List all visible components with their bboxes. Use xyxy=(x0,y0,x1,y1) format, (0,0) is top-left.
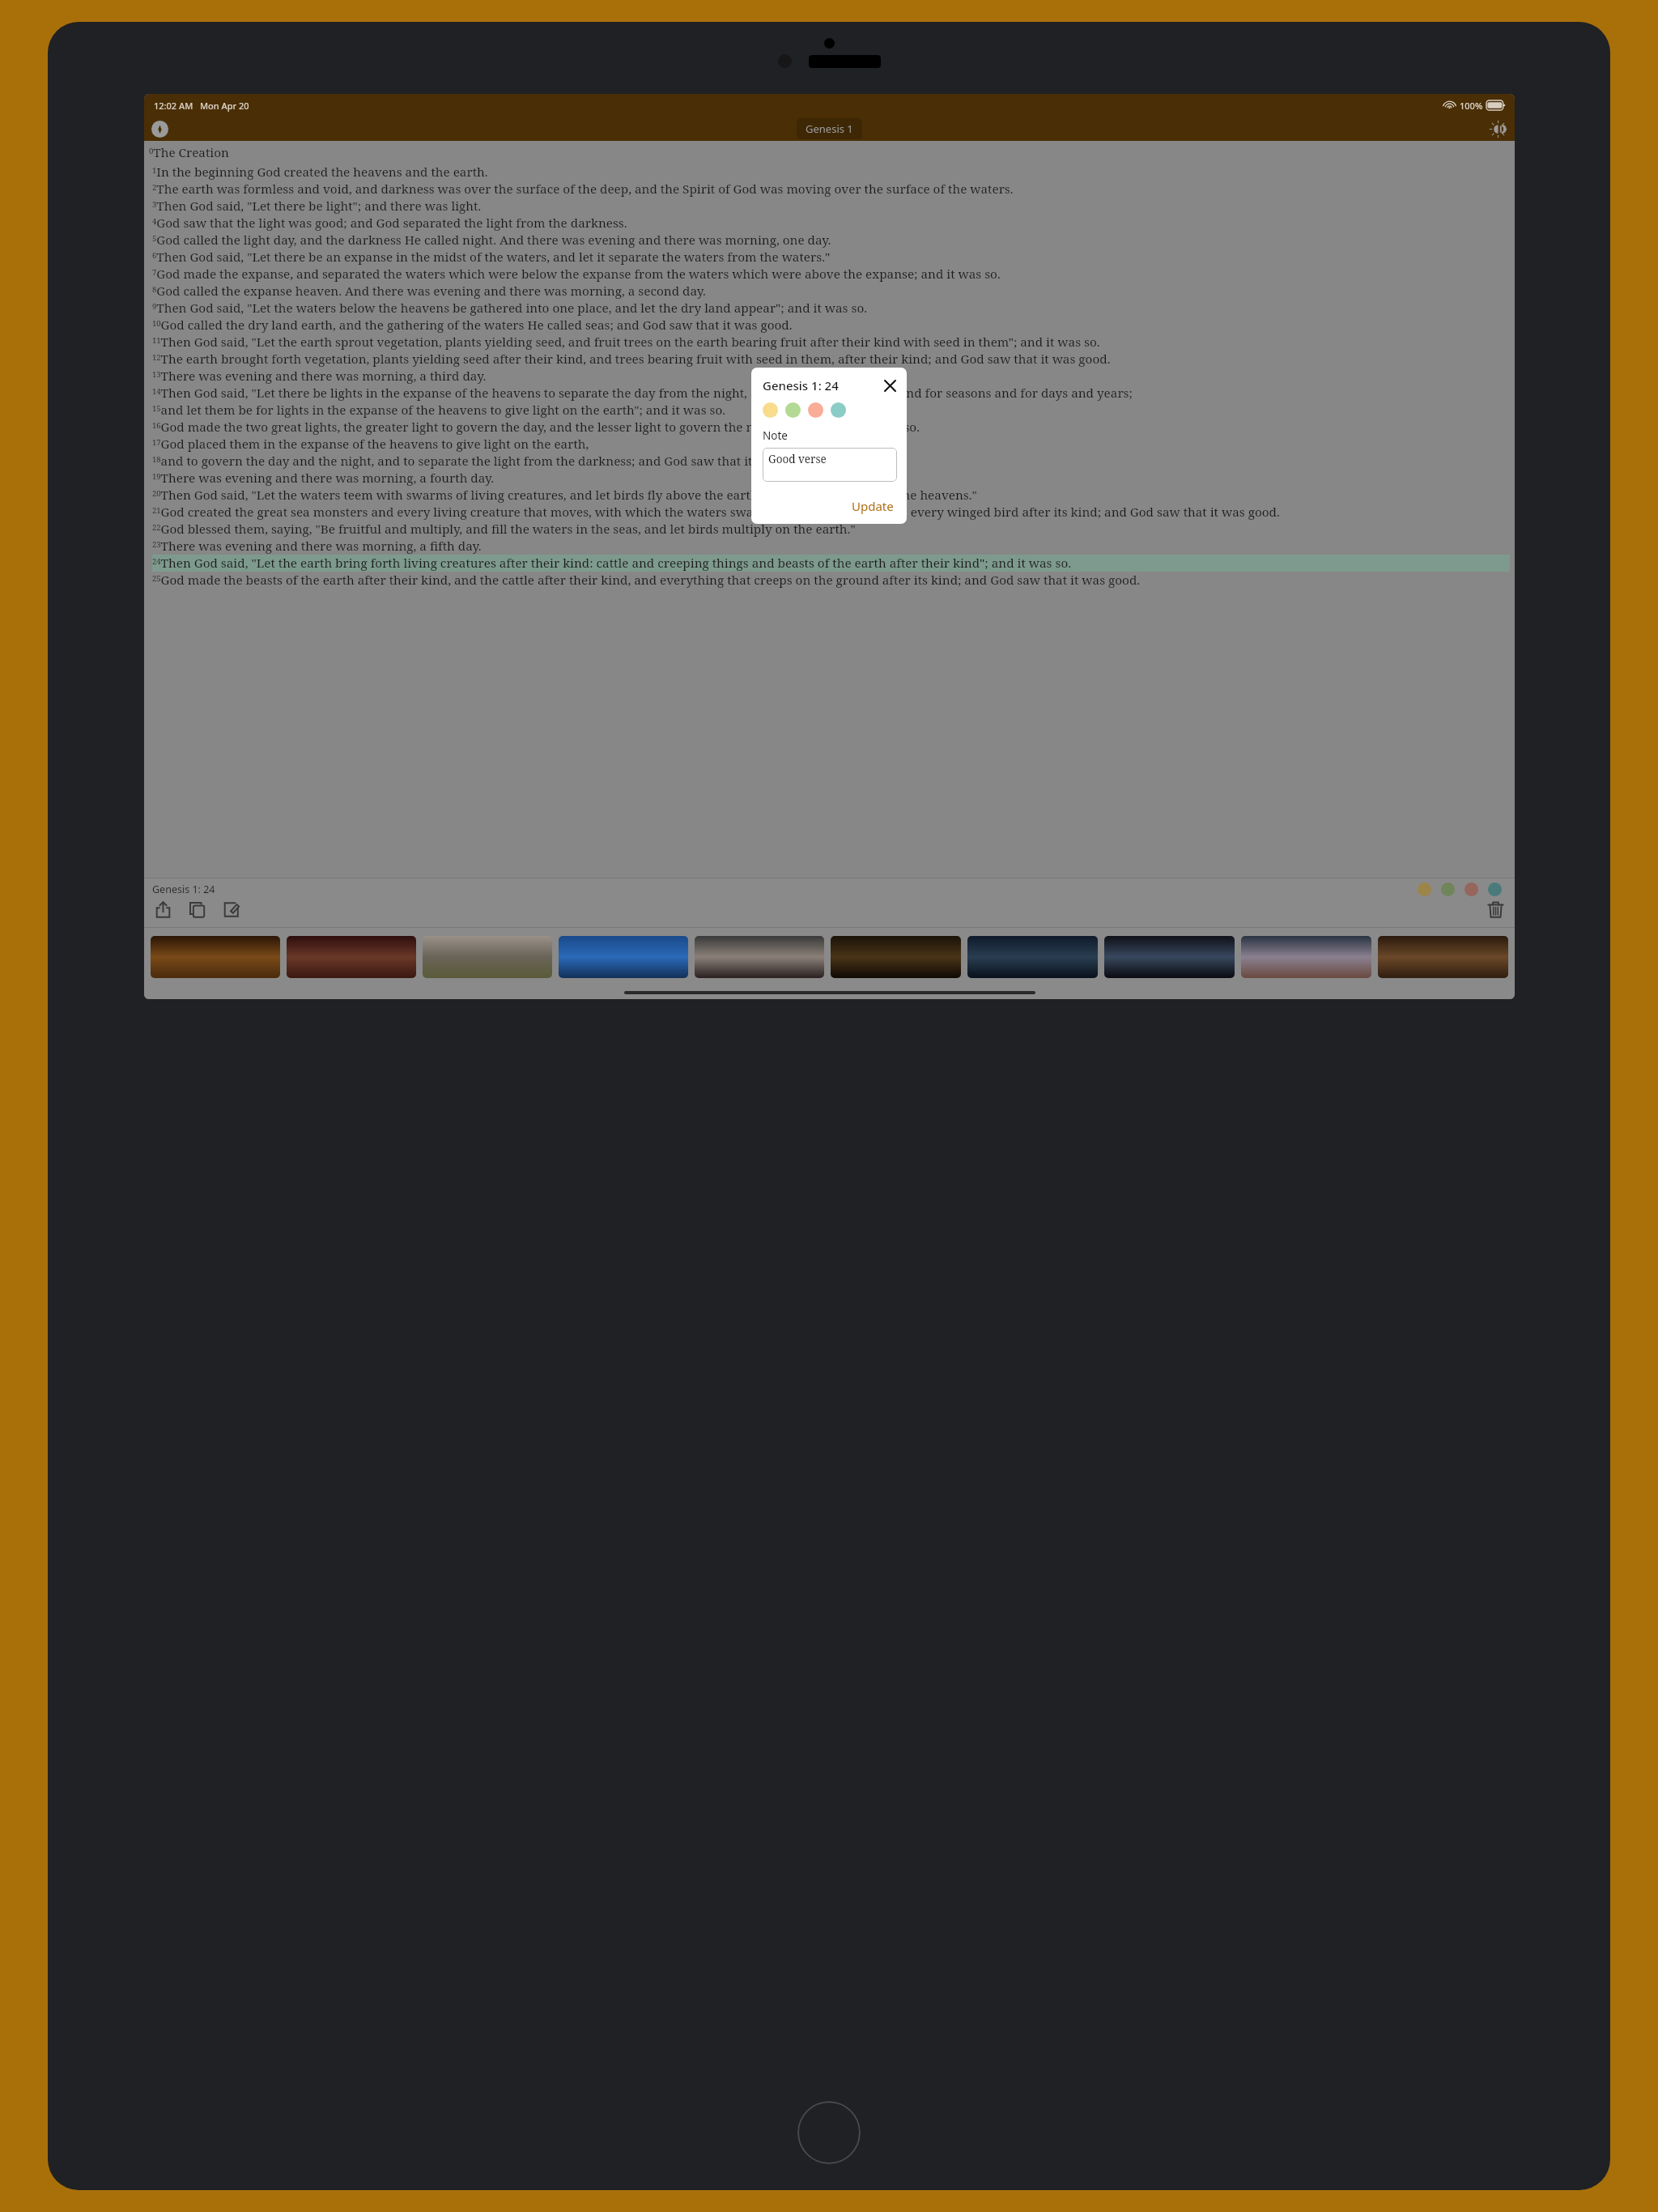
staticText: 100% xyxy=(1460,100,1483,112)
button[interactable]: 19There was evening and there was mornin… xyxy=(152,470,1510,487)
button[interactable]: Genesis 1 xyxy=(797,118,862,139)
staticText: Genesis 1 xyxy=(806,121,853,136)
button[interactable]: 15and let them be for lights in the expa… xyxy=(152,402,1510,419)
staticText: Note xyxy=(763,428,788,443)
button[interactable]: 20Then God said, "Let the waters teem wi… xyxy=(152,487,1510,504)
button[interactable]: Background image xyxy=(287,936,416,978)
button[interactable]: 3Then God said, "Let there be light"; an… xyxy=(152,198,1510,215)
staticText: Good verse xyxy=(768,452,827,466)
button[interactable]: 14Then God said, "Let there be lights in… xyxy=(152,385,1510,402)
button[interactable]: Highlight colour xyxy=(1488,883,1502,896)
button[interactable]: Pick colour xyxy=(785,402,801,418)
button[interactable]: 4God saw that the light was good; and Go… xyxy=(152,215,1510,232)
button[interactable]: 23There was evening and there was mornin… xyxy=(152,538,1510,555)
button[interactable]: Background image xyxy=(695,936,824,978)
button[interactable]: Home xyxy=(797,2101,861,2164)
button[interactable]: Share xyxy=(154,900,172,919)
button[interactable]: 12The earth brought forth vegetation, pl… xyxy=(152,351,1510,368)
button[interactable]: Copy xyxy=(188,900,206,919)
button[interactable]: 0The Creation xyxy=(149,144,1510,161)
button[interactable]: 1In the beginning God created the heaven… xyxy=(152,164,1510,181)
button[interactable]: 5God called the light day, and the darkn… xyxy=(152,232,1510,249)
button[interactable]: 16God made the two great lights, the gre… xyxy=(152,419,1510,436)
button[interactable]: 9Then God said, "Let the waters below th… xyxy=(152,300,1510,317)
button[interactable]: 10God called the dry land earth, and the… xyxy=(152,317,1510,334)
button[interactable]: Toggle theme xyxy=(1489,120,1507,138)
button[interactable]: 21God created the great sea monsters and… xyxy=(152,504,1510,521)
button[interactable]: Background image xyxy=(423,936,552,978)
button[interactable]: 8God called the expanse heaven. And ther… xyxy=(152,283,1510,300)
button[interactable]: 13There was evening and there was mornin… xyxy=(152,368,1510,385)
staticText: Update xyxy=(852,498,894,514)
button[interactable]: Pick colour xyxy=(763,402,778,418)
button[interactable]: Pick colour xyxy=(808,402,823,418)
button[interactable]: Highlight colour xyxy=(1441,883,1455,896)
button[interactable]: Close xyxy=(883,379,897,393)
button[interactable]: Background image xyxy=(1378,936,1508,978)
button[interactable]: Pick colour xyxy=(831,402,846,418)
staticText: Genesis 1: 24 xyxy=(152,883,215,896)
staticText: 12:02 AM Mon Apr 20 xyxy=(154,100,249,112)
button[interactable]: Browse xyxy=(151,121,168,138)
button[interactable]: Edit note xyxy=(222,900,240,919)
button[interactable]: 25God made the beasts of the earth after… xyxy=(152,572,1510,589)
button[interactable]: 2The earth was formless and void, and da… xyxy=(152,181,1510,198)
button[interactable]: 11Then God said, "Let the earth sprout v… xyxy=(152,334,1510,351)
button[interactable]: Update xyxy=(848,496,897,516)
button[interactable]: Highlight colour xyxy=(1465,883,1478,896)
button[interactable]: Delete xyxy=(1486,900,1505,919)
staticText: Genesis 1: 24 xyxy=(763,377,839,393)
button[interactable]: Highlight colour xyxy=(1418,883,1431,896)
button[interactable]: Background image xyxy=(559,936,688,978)
button[interactable]: 17God placed them in the expanse of the … xyxy=(152,436,1510,453)
button[interactable]: Good verse xyxy=(763,448,897,482)
button[interactable]: Background image xyxy=(1241,936,1371,978)
button[interactable]: Background image xyxy=(151,936,280,978)
button[interactable]: Background image xyxy=(831,936,961,978)
button[interactable]: 6Then God said, "Let there be an expanse… xyxy=(152,249,1510,266)
button[interactable]: 22God blessed them, saying, "Be fruitful… xyxy=(152,521,1510,538)
button[interactable]: 24Then God said, "Let the earth bring fo… xyxy=(152,555,1510,572)
button[interactable]: Background image xyxy=(1104,936,1235,978)
button[interactable]: 18and to govern the day and the night, a… xyxy=(152,453,1510,470)
button[interactable]: 7God made the expanse, and separated the… xyxy=(152,266,1510,283)
button[interactable]: Background image xyxy=(967,936,1098,978)
